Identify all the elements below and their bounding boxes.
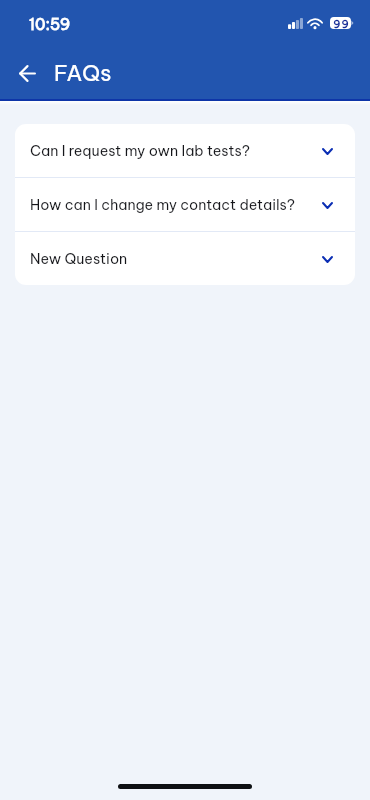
- button[interactable]: Back: [5, 51, 49, 95]
- staticText: 10:59: [29, 14, 71, 34]
- button[interactable]: New Question: [15, 232, 355, 285]
- staticText: New Question: [30, 250, 313, 268]
- staticText: FAQs: [54, 59, 112, 87]
- staticText: Can I request my own lab tests?: [30, 142, 313, 160]
- staticText: How can I change my contact details?: [30, 196, 313, 214]
- staticText: 99: [333, 17, 350, 30]
- button[interactable]: Can I request my own lab tests?: [15, 124, 355, 177]
- button[interactable]: How can I change my contact details?: [15, 178, 355, 231]
